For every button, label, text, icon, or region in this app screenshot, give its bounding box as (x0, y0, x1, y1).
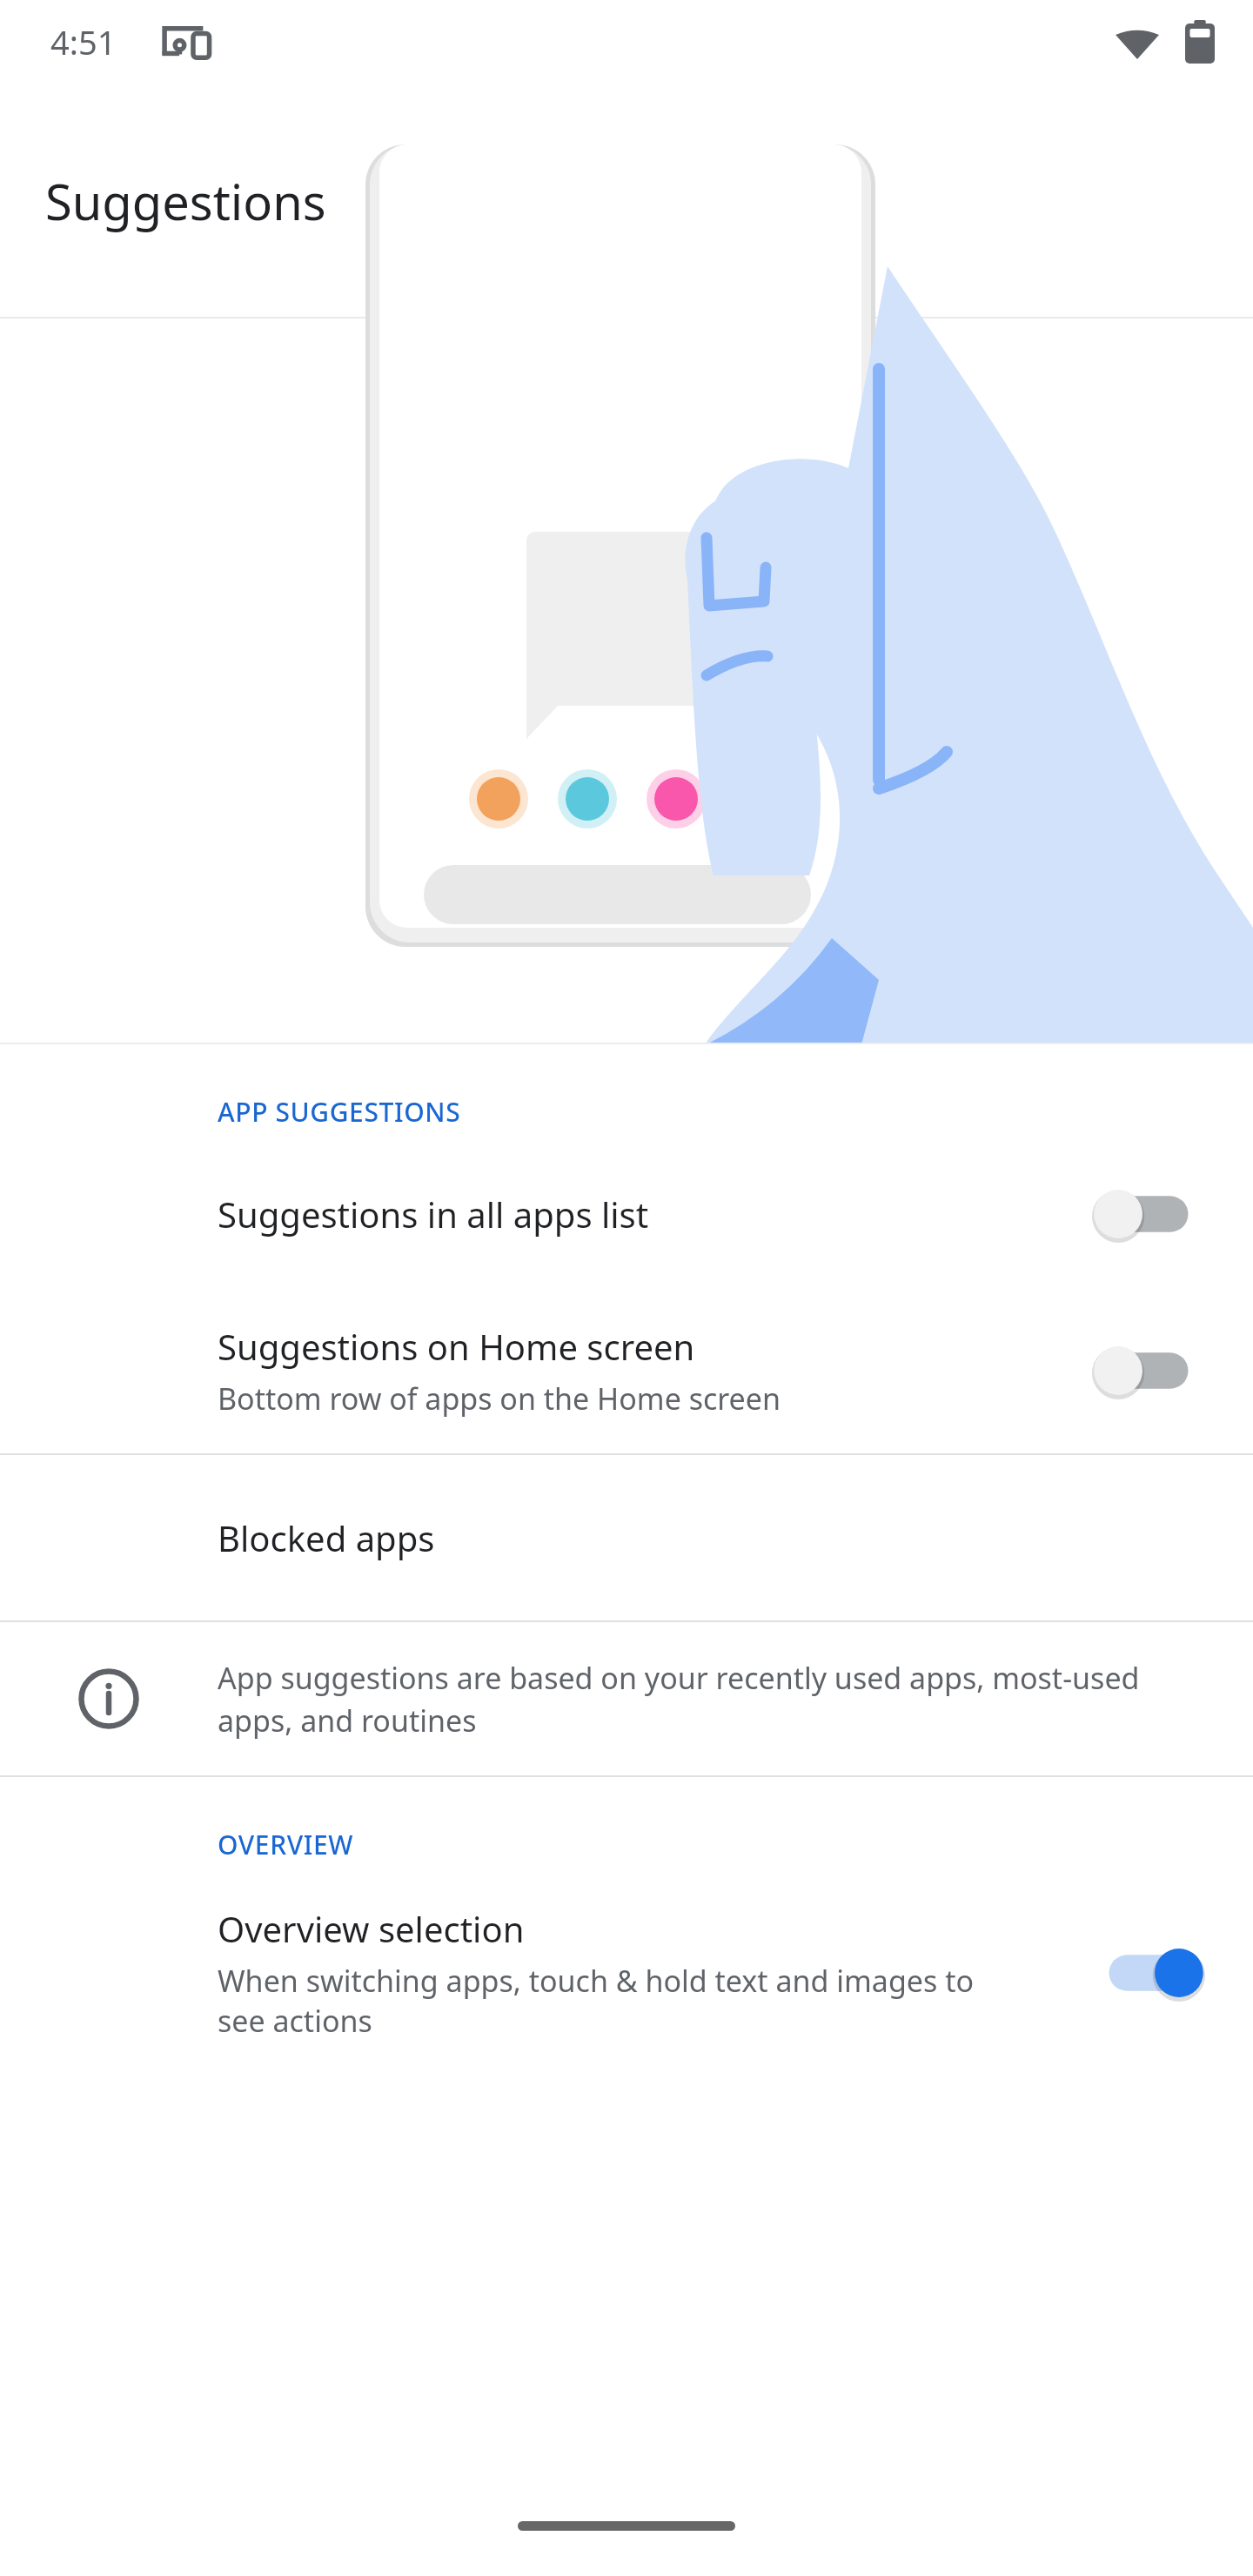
staticText: Blocked apps (218, 1514, 435, 1561)
staticText: 4:51 (50, 19, 117, 64)
button[interactable]: Suggestions on Home screen, off (1044, 1288, 1253, 1453)
button[interactable]: Overview selection, on (1044, 1873, 1253, 2073)
staticText: App suggestions are based on your recent… (218, 1658, 1183, 1741)
button[interactable]: Suggestions in all apps list (0, 1140, 1253, 1288)
staticText: Suggestions on Home screen (218, 1323, 695, 1370)
staticText: Bottom row of apps on the Home screen (218, 1379, 781, 1419)
button[interactable]: Suggestions on Home screen (0, 1288, 1253, 1453)
button[interactable]: Overview selection (0, 1873, 1253, 2073)
staticText: Suggestions (45, 168, 326, 234)
staticText: Suggestions in all apps list (218, 1191, 649, 1238)
staticText: When switching apps, touch & hold text a… (218, 1961, 992, 2041)
button[interactable]: Blocked apps (0, 1455, 1253, 1620)
staticText: OVERVIEW (218, 1827, 354, 1862)
button[interactable]: Suggestions in all apps list, off (1044, 1140, 1253, 1288)
staticText: APP SUGGESTIONS (218, 1094, 461, 1130)
staticText: Overview selection (218, 1905, 525, 1952)
